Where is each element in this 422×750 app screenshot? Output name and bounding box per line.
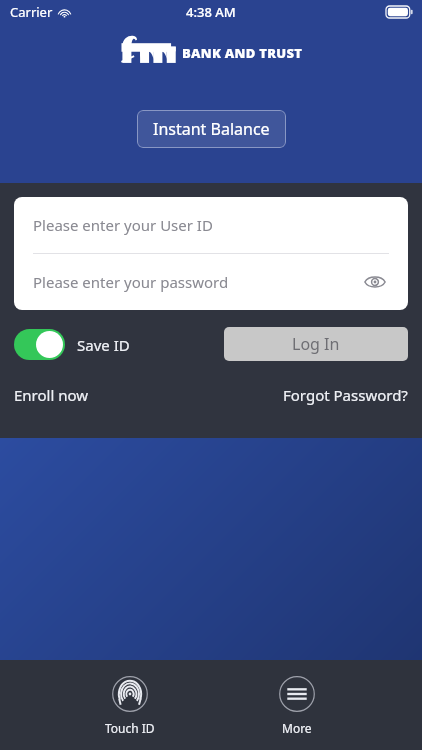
staticText: Touch ID	[105, 720, 155, 736]
staticText: Carrier	[10, 3, 53, 21]
button[interactable]: Save ID	[14, 329, 130, 360]
button[interactable]: Please enter your User ID	[14, 197, 408, 253]
button[interactable]: Instant Balance	[137, 110, 286, 148]
staticText: More	[282, 720, 312, 736]
staticText: BANK AND TRUST	[182, 44, 303, 62]
button[interactable]: Touch ID	[87, 660, 173, 742]
button[interactable]: Log In	[224, 327, 408, 361]
staticText: Log In	[292, 333, 340, 355]
button[interactable]: Please enter your password	[14, 254, 408, 310]
staticText: Please enter your User ID	[33, 215, 213, 235]
staticText: Forgot Password?	[283, 385, 408, 405]
button[interactable]: Show password	[361, 268, 389, 296]
button[interactable]: Forgot Password?	[283, 385, 408, 405]
staticText: Instant Balance	[153, 118, 270, 140]
staticText: Please enter your password	[33, 272, 229, 292]
staticText: 4:38 AM	[186, 3, 236, 21]
button[interactable]: Enroll now	[14, 385, 89, 405]
staticText: Save ID	[77, 335, 130, 355]
button[interactable]: More	[259, 660, 335, 742]
staticText: Enroll now	[14, 385, 89, 405]
